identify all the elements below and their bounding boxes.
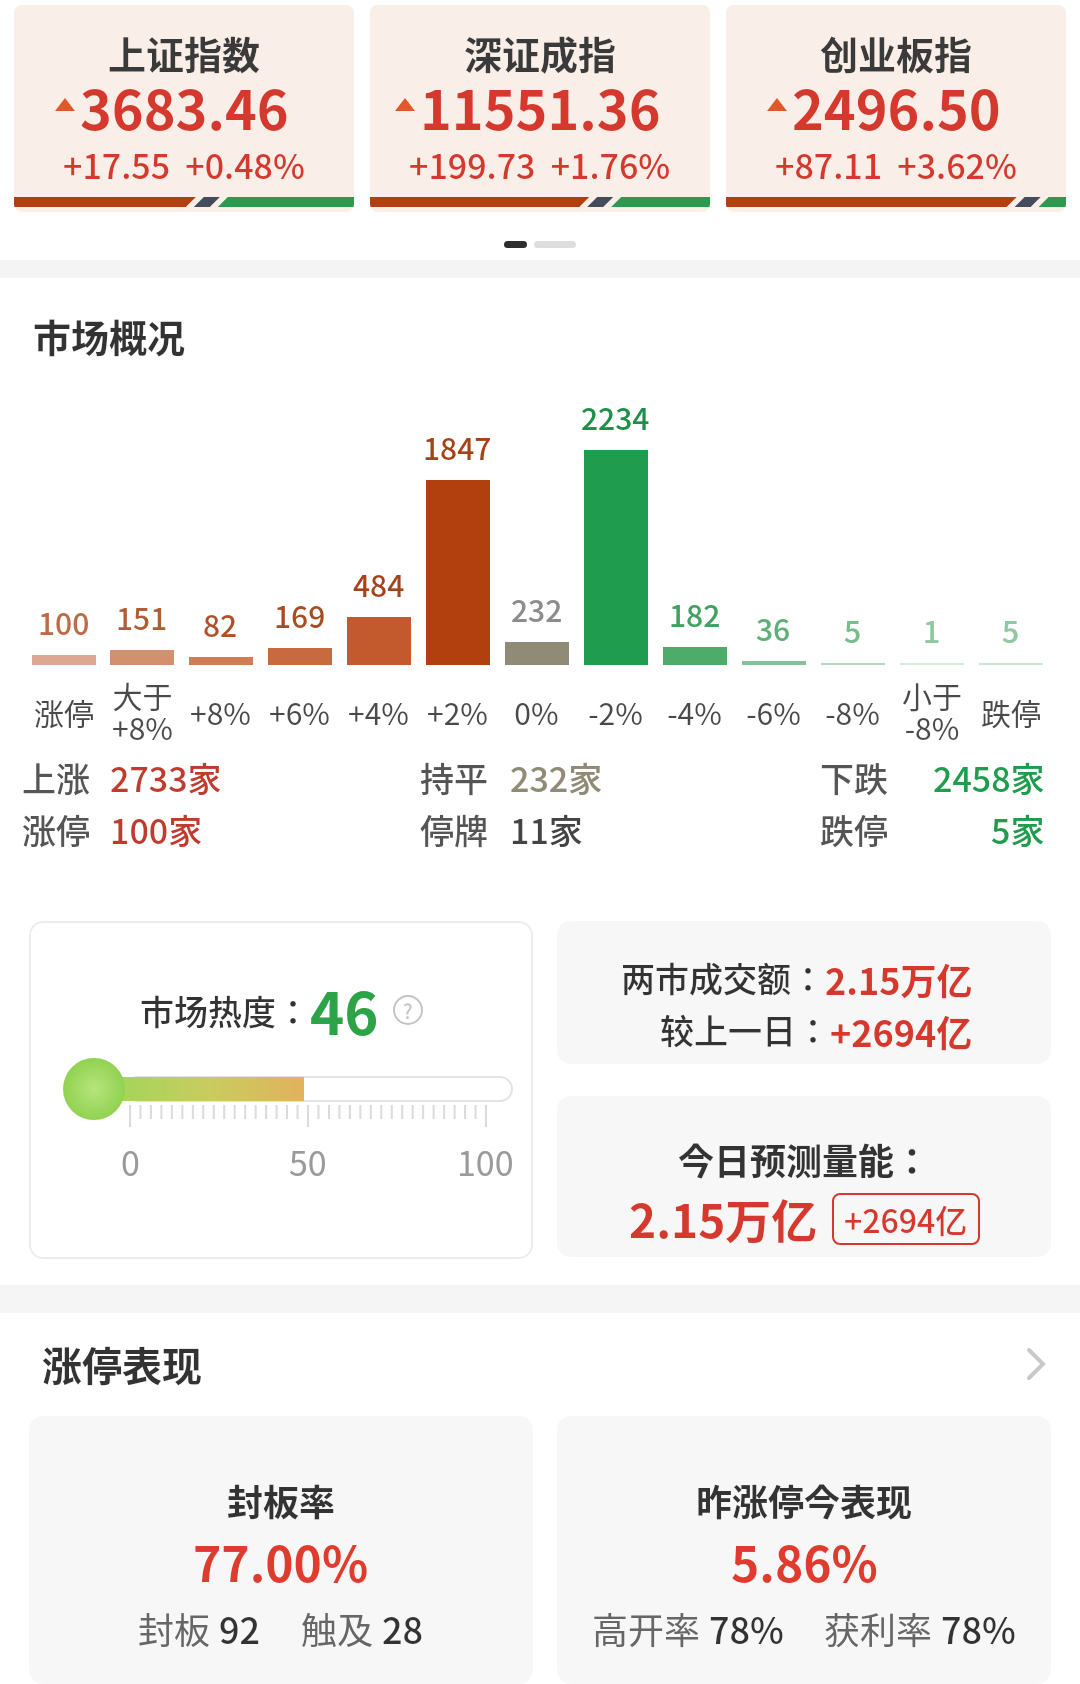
staticText: 市场热度： <box>140 986 310 1035</box>
staticText: 78% <box>709 1602 784 1654</box>
staticText: 大于 +8% <box>112 673 173 749</box>
staticText: 上涨 <box>22 753 90 802</box>
staticText: 涨停 <box>34 690 94 733</box>
staticText: +199.73 +1.76% <box>409 140 671 189</box>
button[interactable]: 涨停表现 <box>42 1335 1045 1393</box>
staticText: 2234 <box>581 395 650 438</box>
staticText: -2% <box>588 690 643 733</box>
staticText: 232家 <box>510 753 603 802</box>
staticText: 232 <box>511 587 563 630</box>
staticText: +87.11 +3.62% <box>775 140 1017 189</box>
staticText: 跌停 <box>981 690 1041 733</box>
staticText: 92 <box>219 1602 261 1654</box>
staticText: +4% <box>348 690 409 733</box>
staticText: 5.86% <box>731 1526 878 1596</box>
staticText: 触及 <box>301 1602 382 1654</box>
staticText: 100家 <box>110 805 203 854</box>
staticText: +6% <box>269 690 330 733</box>
staticText: 2458家 <box>933 753 1045 802</box>
staticText: 50 <box>289 1137 327 1186</box>
staticText: 78% <box>941 1602 1016 1654</box>
staticText: 两市成交额： <box>621 953 825 1002</box>
staticText: 今日预测量能： <box>678 1133 931 1185</box>
staticText: 182 <box>669 592 721 635</box>
staticText: 3683.46 <box>80 67 289 145</box>
staticText: 2.15万亿 <box>825 953 973 1005</box>
staticText: -6% <box>746 690 801 733</box>
staticText: +2694亿 <box>844 1196 968 1242</box>
staticText: 169 <box>274 593 326 636</box>
staticText: 5 <box>844 608 862 651</box>
staticText: 46 <box>310 968 379 1052</box>
staticText: 82 <box>203 602 238 645</box>
staticText: 1 <box>923 608 941 651</box>
staticText: 获利率 <box>824 1602 941 1654</box>
button[interactable]: 今日预测量能： <box>557 1096 1051 1257</box>
staticText: 11家 <box>510 805 583 854</box>
staticText: -4% <box>667 690 722 733</box>
staticText: 市场概况 <box>33 308 186 363</box>
staticText: 高开率 <box>592 1602 709 1654</box>
staticText: 涨停 <box>22 805 90 854</box>
staticText: 昨涨停今表现 <box>696 1474 913 1526</box>
staticText: 持平 <box>420 753 488 802</box>
staticText: 深证成指 <box>464 25 617 80</box>
staticText: 较上一日： <box>660 1005 830 1054</box>
staticText: +8% <box>190 690 251 733</box>
button[interactable]: 深证成指 <box>370 5 710 212</box>
staticText: 涨停表现 <box>42 1335 202 1393</box>
button[interactable]: 昨涨停今表现 <box>557 1416 1051 1684</box>
button[interactable]: 上证指数 <box>14 5 354 212</box>
staticText: -8% <box>825 690 880 733</box>
staticText: +17.55 +0.48% <box>63 140 305 189</box>
staticText: 停牌 <box>420 805 488 854</box>
staticText: 100 <box>38 600 90 643</box>
staticText: 创业板指 <box>820 25 973 80</box>
staticText: 0% <box>514 690 559 733</box>
staticText: 2.15万亿 <box>629 1185 818 1252</box>
staticText: 100 <box>457 1137 514 1186</box>
staticText: 跌停 <box>820 805 888 854</box>
staticText: 2733家 <box>110 753 222 802</box>
staticText: 小于 -8% <box>902 673 962 749</box>
staticText: 484 <box>353 562 405 605</box>
button[interactable]: 创业板指 <box>726 5 1066 212</box>
staticText: 封板率 <box>227 1474 336 1526</box>
button[interactable]: 封板率 <box>29 1416 533 1684</box>
staticText: 28 <box>382 1602 424 1654</box>
staticText: 5 <box>1002 608 1020 651</box>
staticText: 1847 <box>423 425 492 468</box>
staticText: ? <box>403 996 413 1025</box>
staticText: 0 <box>121 1137 140 1186</box>
button[interactable]: 两市成交额： <box>557 921 1051 1064</box>
staticText: 36 <box>756 606 791 649</box>
staticText: 5家 <box>991 805 1045 854</box>
staticText: 2496.50 <box>792 67 1001 145</box>
staticText: 封板 <box>138 1602 219 1654</box>
button[interactable]: 市场热度： <box>29 921 533 1259</box>
staticText: +2694亿 <box>830 1005 973 1057</box>
staticText: 上证指数 <box>108 25 261 80</box>
staticText: 下跌 <box>820 753 888 802</box>
staticText: 77.00% <box>193 1526 369 1596</box>
staticText: +2% <box>427 690 488 733</box>
staticText: 151 <box>116 595 168 638</box>
staticText: 11551.36 <box>420 67 661 145</box>
